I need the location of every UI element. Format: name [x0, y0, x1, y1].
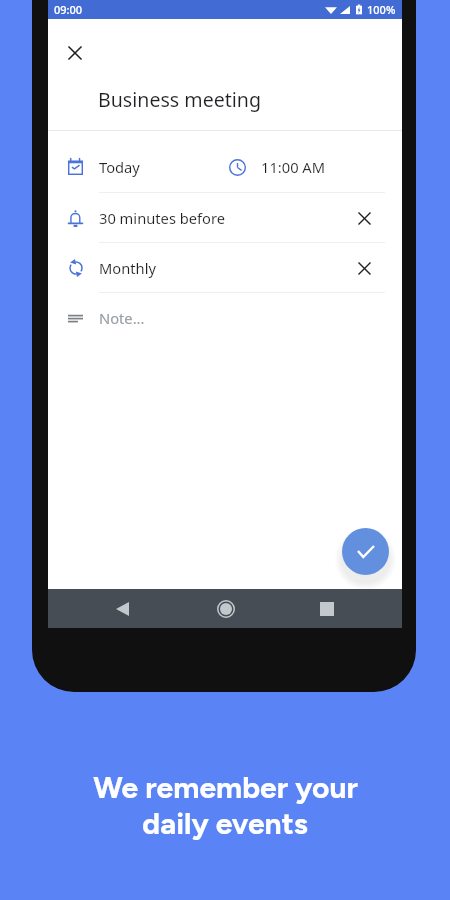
button[interactable]: Remove	[351, 255, 377, 281]
staticText: 100%	[367, 2, 396, 17]
button[interactable]: Back	[102, 589, 143, 628]
staticText: 11:00 AM	[261, 157, 326, 177]
button[interactable]: 11:00 AM	[220, 142, 380, 192]
button[interactable]: 30 minutes before	[48, 193, 402, 243]
button[interactable]: Save	[342, 528, 389, 575]
button[interactable]: Today	[48, 142, 220, 192]
button[interactable]: Remove	[351, 205, 377, 231]
staticText: 09:00	[54, 2, 83, 17]
button[interactable]: Close	[59, 37, 91, 69]
staticText: We remember your	[93, 769, 358, 805]
button[interactable]: Recents	[306, 589, 347, 628]
button[interactable]: Note...	[48, 293, 402, 343]
staticText: Today	[99, 157, 140, 177]
staticText: Note...	[99, 308, 145, 328]
button[interactable]: Monthly	[48, 243, 402, 293]
staticText: Monthly	[99, 258, 156, 278]
staticText: 30 minutes before	[99, 208, 226, 228]
staticText: daily events	[142, 805, 308, 841]
button[interactable]: Home	[205, 589, 246, 628]
staticText: Business meeting	[98, 86, 262, 113]
